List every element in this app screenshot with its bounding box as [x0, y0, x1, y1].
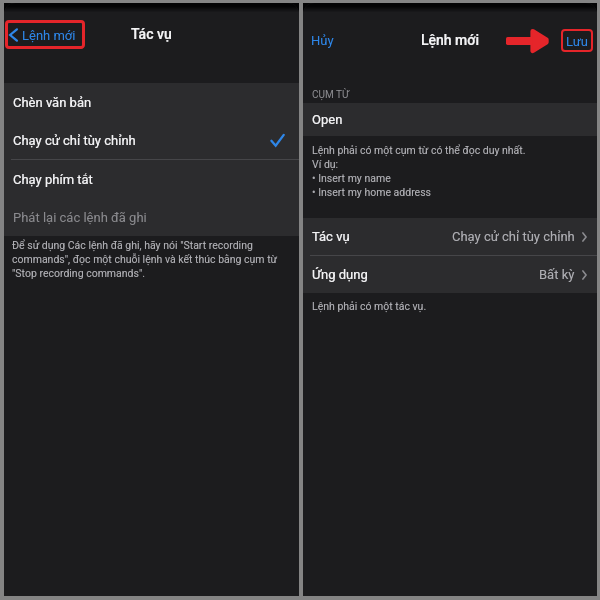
button[interactable]: Ứng dụng — [303, 256, 597, 293]
button[interactable]: Lưu — [561, 30, 592, 52]
button[interactable]: Phát lại các lệnh đã ghi — [4, 198, 299, 236]
staticText: Hủy — [311, 33, 334, 48]
button[interactable]: Lệnh mới — [5, 21, 85, 49]
staticText: Lệnh phải có một cụm từ có thể đọc duy n… — [312, 144, 526, 198]
staticText: Chạy cử chỉ tùy chỉnh — [452, 229, 575, 244]
staticText: Open — [312, 112, 343, 127]
staticText: Bất kỳ — [539, 267, 575, 282]
button[interactable]: Open — [303, 103, 597, 136]
button[interactable]: Chạy phím tắt — [4, 160, 299, 198]
staticText: Để sử dụng Các lệnh đã ghi, hãy nói "Sta… — [12, 239, 288, 279]
staticText: Chèn văn bản — [13, 95, 92, 110]
staticText: Chạy cử chỉ tùy chỉnh — [13, 133, 136, 148]
staticText: Lưu — [566, 34, 588, 49]
button[interactable]: Chèn văn bản — [4, 83, 299, 121]
staticText: Tác vụ — [312, 229, 350, 244]
staticText: Lệnh mới — [22, 28, 76, 43]
button[interactable]: Hủy — [308, 28, 337, 52]
other: Arrow pointing to Save — [505, 27, 549, 55]
button[interactable]: Chạy cử chỉ tùy chỉnh — [4, 121, 299, 159]
staticText: Phát lại các lệnh đã ghi — [13, 210, 147, 225]
staticText: Lệnh phải có một tác vụ. — [312, 300, 427, 312]
staticText: Chạy phím tắt — [13, 172, 93, 187]
staticText: Ứng dụng — [312, 267, 368, 282]
staticText: CỤM TỪ — [312, 89, 349, 101]
staticText: Lệnh mới — [421, 32, 479, 48]
button[interactable]: Tác vụ — [303, 218, 597, 255]
staticText: Tác vụ — [131, 26, 172, 42]
